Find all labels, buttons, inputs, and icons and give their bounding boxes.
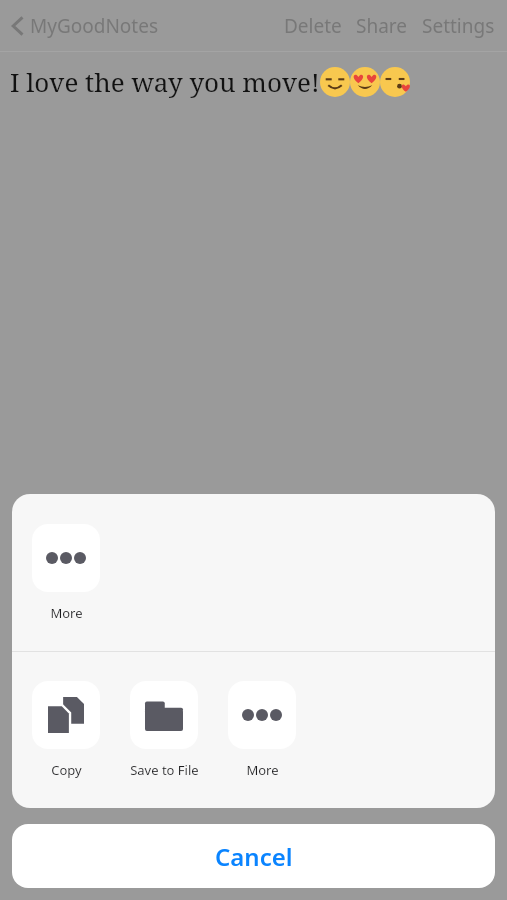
button[interactable]: Share: [354, 7, 410, 45]
staticText: More: [50, 604, 83, 622]
staticText: MyGoodNotes: [30, 13, 159, 39]
staticText: Delete: [284, 13, 342, 39]
button[interactable]: Save to Files: [130, 681, 198, 779]
button[interactable]: More: [32, 524, 100, 622]
button[interactable]: Settings: [420, 7, 497, 45]
button[interactable]: Delete: [282, 7, 344, 45]
button[interactable]: MyGoodNotes: [10, 13, 159, 39]
other: Save to Files: [145, 699, 183, 731]
other: More: [242, 709, 282, 721]
button[interactable]: Copy: [32, 681, 100, 779]
staticText: I love the way you move!: [10, 64, 320, 99]
staticText: Copy: [51, 761, 82, 779]
staticText: Share: [356, 13, 408, 39]
staticText: More: [246, 761, 279, 779]
staticText: Settings: [422, 13, 495, 39]
staticText: Save to Files: [130, 761, 198, 779]
button[interactable]: Cancel: [12, 824, 495, 888]
other: Copy: [48, 697, 84, 733]
button[interactable]: More: [228, 681, 296, 779]
staticText: Cancel: [215, 840, 293, 873]
other: More: [46, 552, 86, 564]
